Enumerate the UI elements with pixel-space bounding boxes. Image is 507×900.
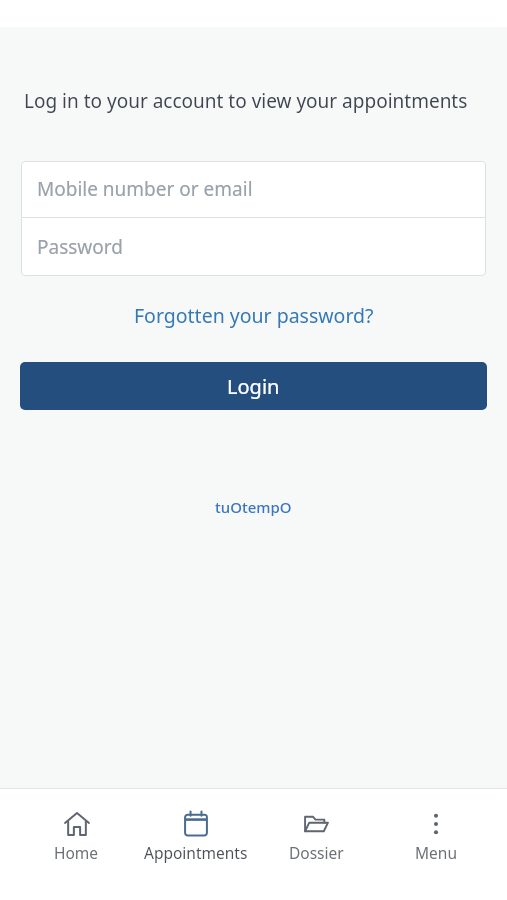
button[interactable]: Mobile number or email — [21, 161, 486, 217]
staticText: Login — [227, 373, 280, 400]
staticText: Password — [37, 234, 123, 260]
button[interactable]: Dossier — [256, 789, 376, 863]
staticText: tuOtempO — [215, 497, 292, 517]
button[interactable]: Appointments — [136, 789, 256, 863]
button[interactable]: Forgotten your password? — [126, 298, 382, 333]
staticText: Dossier — [289, 842, 344, 863]
staticText: Mobile number or email — [37, 176, 253, 202]
staticText: Log in to your account to view your appo… — [24, 88, 468, 114]
staticText: Forgotten your password? — [134, 302, 374, 329]
button[interactable]: Menu — [376, 789, 496, 863]
button[interactable]: Home — [17, 789, 136, 863]
staticText: Menu — [415, 842, 457, 863]
staticText: Home — [54, 842, 99, 863]
button[interactable]: Password — [21, 218, 486, 276]
button[interactable]: Login — [20, 362, 487, 410]
staticText: Appointments — [144, 842, 248, 863]
